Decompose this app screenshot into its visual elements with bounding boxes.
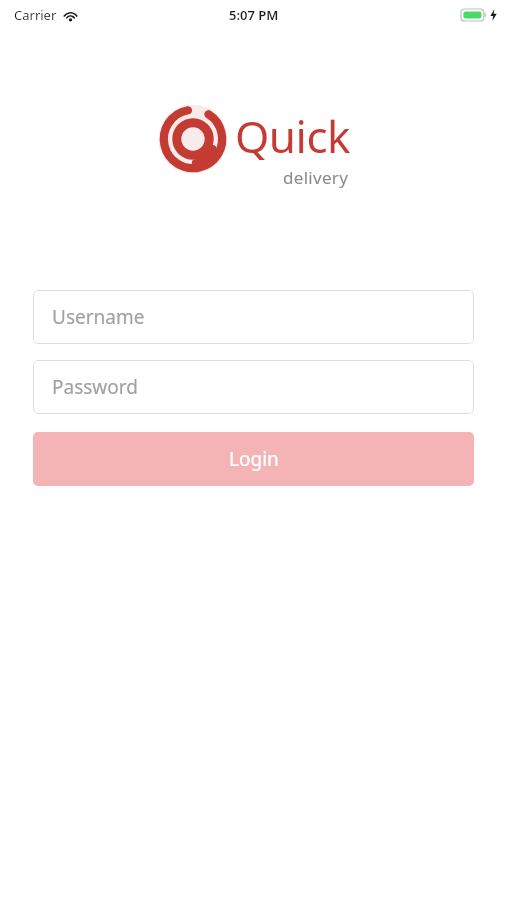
staticText: 5:07 PM — [229, 6, 279, 24]
staticText: Username — [52, 304, 145, 330]
button[interactable]: Username — [33, 290, 474, 344]
button[interactable]: Password — [33, 360, 474, 414]
staticText: delivery — [283, 166, 349, 189]
staticText: Password — [52, 374, 138, 400]
staticText: Quick — [235, 106, 351, 166]
button[interactable]: Login — [33, 432, 474, 486]
staticText: Carrier — [14, 6, 57, 24]
staticText: Login — [229, 446, 279, 472]
